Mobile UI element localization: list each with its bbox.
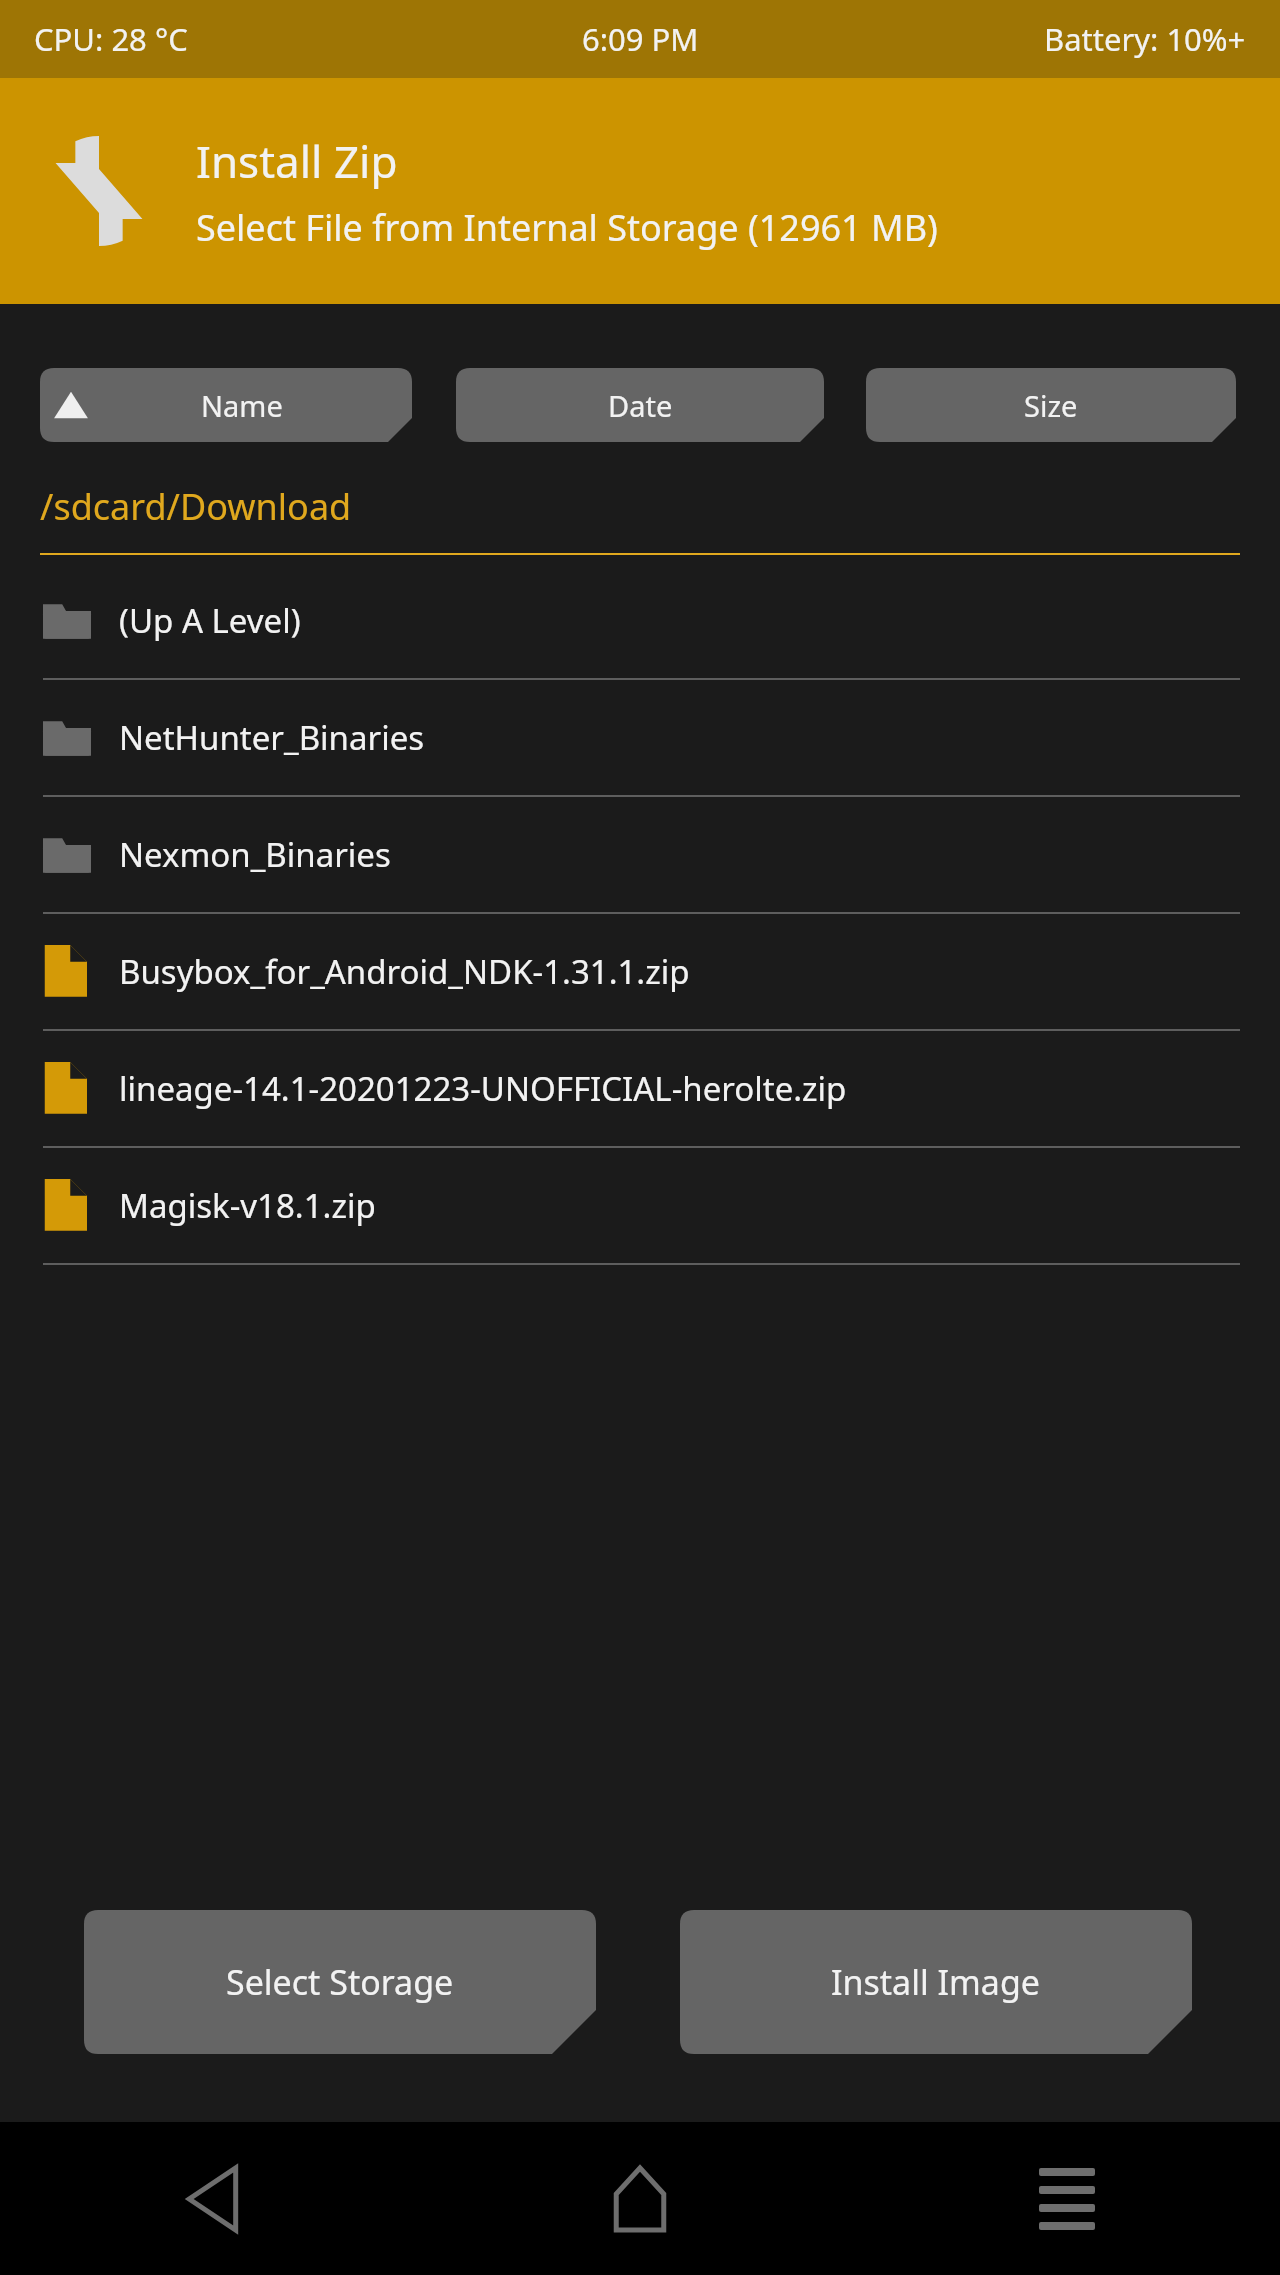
staticText: CPU: 28 °C bbox=[34, 18, 188, 60]
button[interactable]: Home bbox=[426, 2122, 853, 2275]
staticText: Install Image bbox=[831, 1959, 1041, 2005]
button[interactable]: Select Storage bbox=[84, 1910, 596, 2054]
staticText: Size bbox=[1024, 386, 1078, 425]
button[interactable]: Nexmon_Binaries bbox=[0, 797, 1280, 912]
staticText: Install Zip bbox=[196, 131, 398, 191]
button[interactable]: (Up A Level) bbox=[0, 563, 1280, 678]
button[interactable]: Magisk-v18.1.zip bbox=[0, 1148, 1280, 1263]
staticText: Battery: 10%+ bbox=[1044, 18, 1246, 60]
staticText: Busybox_for_Android_NDK-1.31.1.zip bbox=[119, 949, 690, 994]
button[interactable]: Back bbox=[0, 2122, 426, 2275]
staticText: /sdcard/Download bbox=[40, 482, 352, 531]
button[interactable]: Install Image bbox=[680, 1910, 1192, 2054]
staticText: 6:09 PM bbox=[582, 18, 699, 60]
staticText: Magisk-v18.1.zip bbox=[119, 1183, 376, 1228]
button[interactable]: Busybox_for_Android_NDK-1.31.1.zip bbox=[0, 914, 1280, 1029]
staticText: Select File from Internal Storage (12961… bbox=[196, 203, 938, 252]
button[interactable]: lineage-14.1-20201223-UNOFFICIAL-herolte… bbox=[0, 1031, 1280, 1146]
button[interactable]: Name bbox=[40, 368, 412, 442]
staticText: Date bbox=[608, 386, 673, 425]
button[interactable]: Recent apps bbox=[853, 2122, 1280, 2275]
staticText: Select Storage bbox=[226, 1959, 454, 2005]
staticText: Name bbox=[201, 386, 283, 425]
staticText: NetHunter_Binaries bbox=[119, 715, 425, 760]
button[interactable]: Size bbox=[866, 368, 1236, 442]
staticText: Nexmon_Binaries bbox=[119, 832, 391, 877]
staticText: lineage-14.1-20201223-UNOFFICIAL-herolte… bbox=[119, 1066, 847, 1111]
staticText: (Up A Level) bbox=[119, 598, 301, 643]
button[interactable]: Date bbox=[456, 368, 824, 442]
button[interactable]: NetHunter_Binaries bbox=[0, 680, 1280, 795]
